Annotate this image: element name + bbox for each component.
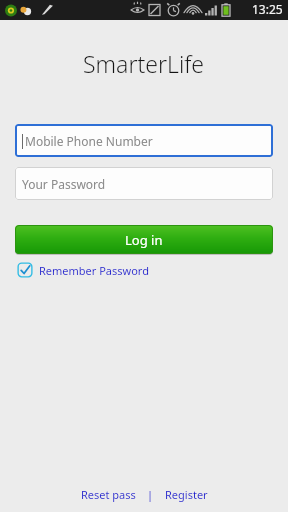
staticText: | (147, 487, 154, 502)
staticText: Your Password (22, 176, 106, 192)
button[interactable]: Reset pass (76, 484, 141, 505)
button[interactable]: Remember Password checkbox (15, 260, 151, 280)
staticText: Register (165, 487, 208, 502)
button[interactable]: Register (160, 484, 213, 505)
button[interactable]: Mobile Phone Number (15, 124, 273, 157)
staticText: Reset pass (81, 487, 136, 502)
button[interactable]: Your Password (15, 167, 273, 200)
staticText: SmarterLife (83, 48, 205, 79)
staticText: Log in (125, 231, 163, 249)
staticText: Mobile Phone Number (25, 133, 153, 149)
other: Remember Password checkbox (17, 262, 33, 278)
staticText: 13:25 (252, 1, 283, 17)
staticText: Remember Password (39, 263, 149, 278)
button[interactable]: Log in (15, 225, 273, 254)
